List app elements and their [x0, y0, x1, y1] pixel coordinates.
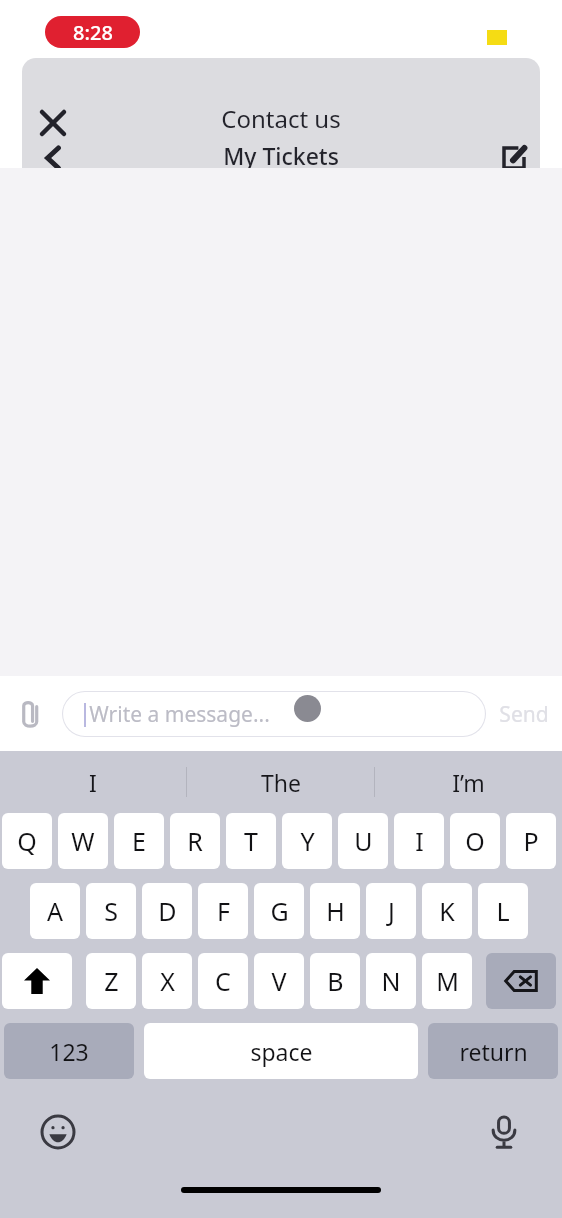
- button[interactable]: P: [506, 813, 556, 869]
- staticText: A: [47, 894, 63, 928]
- staticText: X: [160, 964, 175, 998]
- button[interactable]: O: [450, 813, 500, 869]
- staticText: Y: [300, 824, 315, 858]
- staticText: I: [415, 824, 424, 858]
- button[interactable]: The: [187, 751, 374, 813]
- button[interactable]: 123: [4, 1023, 134, 1079]
- staticText: C: [215, 964, 231, 998]
- button[interactable]: H: [310, 883, 360, 939]
- button[interactable]: Q: [2, 813, 52, 869]
- button[interactable]: Send: [486, 684, 562, 744]
- button[interactable]: Y: [282, 813, 332, 869]
- button[interactable]: I’m: [375, 751, 562, 813]
- button[interactable]: X: [142, 953, 192, 1009]
- button[interactable]: V: [254, 953, 304, 1009]
- button[interactable]: Attach: [0, 684, 62, 744]
- staticText: I: [89, 767, 97, 798]
- button[interactable]: W: [58, 813, 108, 869]
- staticText: U: [354, 824, 373, 858]
- staticText: Send: [499, 700, 549, 729]
- button[interactable]: G: [254, 883, 304, 939]
- button[interactable]: N: [366, 953, 416, 1009]
- button[interactable]: R: [170, 813, 220, 869]
- staticText: The: [261, 767, 301, 798]
- button[interactable]: F: [198, 883, 248, 939]
- button[interactable]: space: [144, 1023, 418, 1079]
- staticText: N: [381, 964, 401, 998]
- button[interactable]: M: [422, 953, 472, 1009]
- staticText: G: [270, 894, 289, 928]
- button[interactable]: return: [428, 1023, 558, 1079]
- button[interactable]: A: [30, 883, 80, 939]
- staticText: P: [523, 824, 539, 858]
- staticText: I’m: [452, 767, 485, 798]
- button[interactable]: Back: [36, 140, 72, 168]
- button[interactable]: Z: [86, 953, 136, 1009]
- staticText: Contact us: [221, 102, 341, 135]
- staticText: E: [132, 824, 146, 858]
- button[interactable]: S: [86, 883, 136, 939]
- button[interactable]: [2, 953, 72, 1009]
- button[interactable]: J: [366, 883, 416, 939]
- button[interactable]: L: [478, 883, 528, 939]
- staticText: V: [271, 964, 287, 998]
- staticText: M: [436, 964, 459, 998]
- button[interactable]: I: [0, 751, 186, 813]
- button[interactable]: Backspace: [486, 953, 556, 1009]
- staticText: Write a message...: [89, 700, 270, 729]
- button[interactable]: Emoji: [36, 1110, 80, 1154]
- staticText: J: [388, 894, 395, 928]
- button[interactable]: Voice input: [482, 1110, 526, 1154]
- button[interactable]: B: [310, 953, 360, 1009]
- staticText: Q: [17, 824, 37, 858]
- staticText: 123: [49, 1036, 89, 1067]
- button[interactable]: Close: [30, 100, 76, 146]
- staticText: K: [439, 894, 455, 928]
- staticText: T: [244, 824, 258, 858]
- button[interactable]: I: [394, 813, 444, 869]
- staticText: F: [217, 894, 230, 928]
- staticText: B: [327, 964, 344, 998]
- staticText: W: [71, 824, 95, 858]
- staticText: L: [496, 894, 510, 928]
- button[interactable]: U: [338, 813, 388, 869]
- button[interactable]: E: [114, 813, 164, 869]
- staticText: H: [326, 894, 345, 928]
- staticText: O: [465, 824, 485, 858]
- staticText: 8:28: [73, 19, 113, 46]
- staticText: My Tickets: [223, 140, 339, 168]
- staticText: Z: [104, 964, 119, 998]
- button[interactable]: Write a message...: [62, 691, 486, 737]
- button[interactable]: K: [422, 883, 472, 939]
- staticText: R: [187, 824, 203, 858]
- staticText: space: [250, 1036, 313, 1067]
- other: Backspace: [504, 964, 538, 998]
- button[interactable]: C: [198, 953, 248, 1009]
- button[interactable]: T: [226, 813, 276, 869]
- staticText: D: [158, 894, 177, 928]
- staticText: S: [104, 894, 118, 928]
- button[interactable]: D: [142, 883, 192, 939]
- button[interactable]: Compose: [496, 140, 532, 168]
- staticText: return: [459, 1036, 528, 1067]
